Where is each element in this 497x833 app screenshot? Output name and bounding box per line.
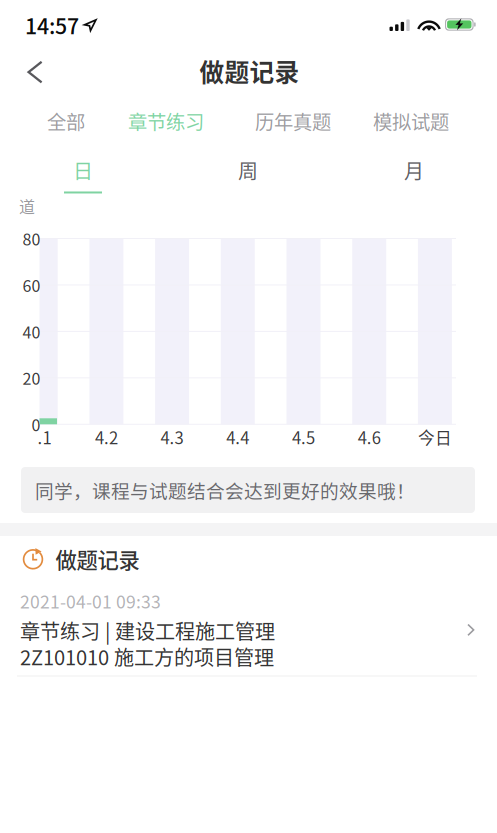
staticText: 同学，课程与试题结合会达到更好的效果哦！ [35, 476, 415, 503]
button[interactable]: 日 [23, 152, 143, 198]
staticText: 4.5 [292, 425, 315, 449]
button[interactable]: 2021-04-01 09:33 [0, 580, 497, 684]
staticText: 全部 [47, 107, 85, 135]
staticText: 4.6 [358, 425, 381, 449]
staticText: 周 [238, 155, 258, 184]
staticText: 80 [22, 227, 40, 250]
staticText: 0 [31, 413, 40, 436]
staticText: 做题记录 [55, 544, 139, 574]
staticText: 月 [404, 155, 424, 184]
staticText: 20 [22, 366, 40, 389]
button[interactable]: 月 [354, 152, 474, 198]
staticText: 道 [19, 194, 35, 218]
staticText: 60 [22, 273, 40, 297]
staticText: 40 [22, 320, 40, 343]
staticText: 2021-04-01 09:33 [20, 588, 161, 613]
staticText: 4.2 [95, 425, 118, 449]
button[interactable]: 周 [188, 152, 308, 198]
staticText: 章节练习 [128, 107, 204, 135]
staticText: 模拟试题 [373, 107, 449, 135]
button[interactable]: 章节练习 [118, 102, 214, 140]
button[interactable]: 全部 [18, 102, 114, 140]
staticText: 历年真题 [255, 107, 331, 135]
staticText: 4.3 [161, 425, 184, 449]
staticText: 今日 [418, 425, 452, 449]
button[interactable]: Back [12, 50, 58, 94]
staticText: 2Z101010 施工方的项目管理 [20, 642, 274, 671]
staticText: 日 [73, 155, 93, 184]
staticText: 14:57 [25, 10, 79, 40]
button[interactable]: 模拟试题 [363, 102, 459, 140]
staticText: 4.4 [226, 425, 249, 449]
button[interactable]: 历年真题 [245, 102, 341, 140]
staticText: .1 [37, 425, 51, 449]
staticText: 做题记录 [199, 53, 299, 89]
staticText: 章节练习 | 建设工程施工管理 [20, 616, 275, 645]
